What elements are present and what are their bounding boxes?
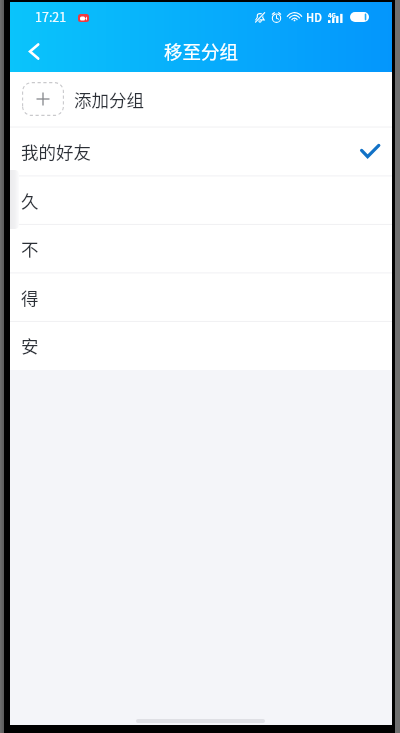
- staticText: 我的好友: [21, 139, 91, 164]
- staticText: 安: [21, 333, 39, 358]
- button[interactable]: 不: [10, 224, 392, 272]
- button[interactable]: 安: [10, 321, 392, 369]
- staticText: 17:21: [35, 7, 67, 25]
- button[interactable]: 我的好友: [10, 127, 392, 175]
- staticText: 久: [21, 188, 39, 213]
- staticText: 4G: [328, 11, 336, 20]
- button[interactable]: 久: [10, 176, 392, 224]
- button[interactable]: Back: [10, 30, 58, 72]
- staticText: 移至分组: [164, 38, 239, 65]
- staticText: 不: [21, 236, 39, 261]
- staticText: 得: [21, 285, 39, 310]
- staticText: 添加分组: [74, 87, 144, 112]
- staticText: HD: [306, 9, 322, 25]
- button[interactable]: 得: [10, 273, 392, 321]
- button[interactable]: 添加分组: [10, 72, 392, 126]
